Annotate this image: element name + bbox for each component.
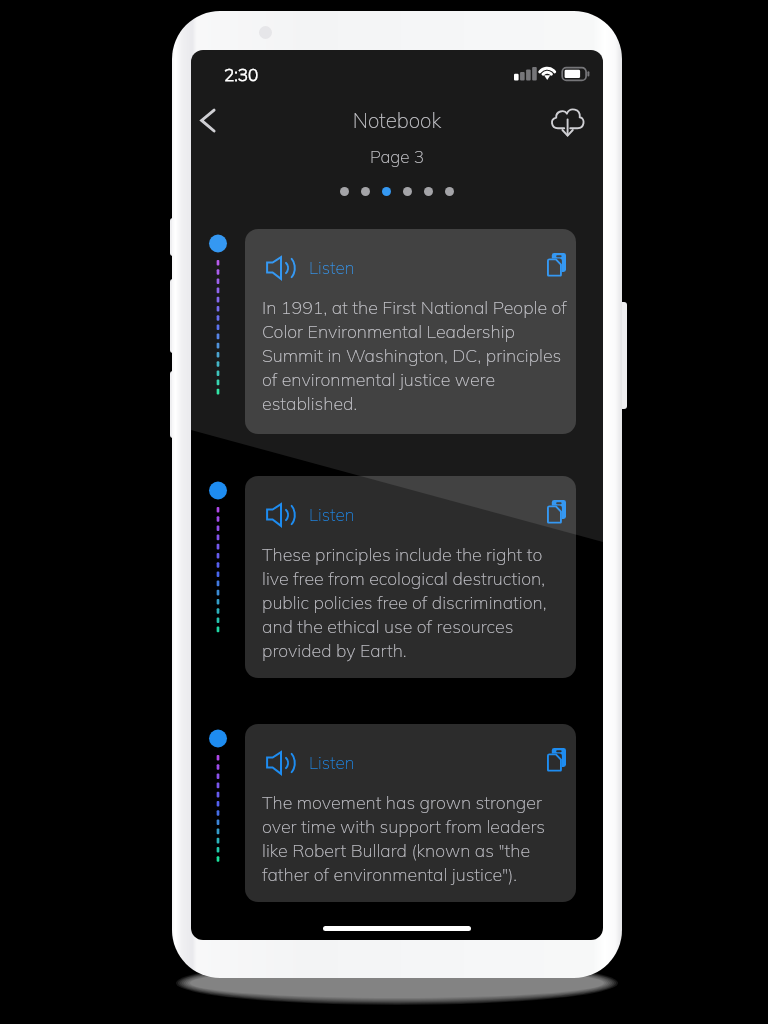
button[interactable]: Copy xyxy=(541,745,571,775)
button[interactable]: Listen xyxy=(245,229,576,434)
button[interactable]: Back xyxy=(191,98,237,142)
button[interactable]: Listen xyxy=(245,724,576,902)
button[interactable]: Listen xyxy=(245,476,576,678)
button[interactable]: Listen xyxy=(262,499,365,533)
staticText: Listen xyxy=(309,752,355,773)
button[interactable] xyxy=(424,187,433,196)
staticText: The movement has grown stronger over tim… xyxy=(262,791,569,885)
staticText: These principles include the right to li… xyxy=(262,543,569,661)
button[interactable]: Listen xyxy=(262,252,365,286)
staticText: Notebook xyxy=(191,107,603,133)
button[interactable]: Listen xyxy=(262,747,365,781)
staticText: Listen xyxy=(309,504,355,525)
button[interactable]: Copy xyxy=(541,497,571,527)
staticText: Listen xyxy=(309,257,355,278)
button[interactable] xyxy=(340,187,349,196)
button[interactable] xyxy=(445,187,454,196)
staticText: In 1991, at the First National People of… xyxy=(262,296,569,414)
button[interactable] xyxy=(382,187,391,196)
staticText: Page 3 xyxy=(191,146,603,167)
button[interactable]: Copy xyxy=(541,250,571,280)
button[interactable]: Download xyxy=(543,100,591,144)
button[interactable] xyxy=(361,187,370,196)
staticText: 2:30 xyxy=(224,64,259,85)
button[interactable] xyxy=(403,187,412,196)
